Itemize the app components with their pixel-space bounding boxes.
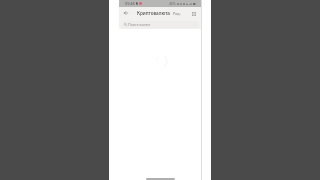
button[interactable]: Ред. bbox=[172, 9, 182, 18]
staticText: Криптовалюта bbox=[137, 10, 170, 16]
staticText: 46% bbox=[169, 2, 176, 6]
button[interactable]: Поиск валют bbox=[121, 21, 199, 28]
staticText: 09:48 bbox=[125, 1, 135, 6]
button[interactable]: Sort bbox=[189, 9, 198, 18]
button[interactable]: Back bbox=[121, 8, 131, 18]
staticText: Поиск валют bbox=[128, 22, 151, 27]
staticText: Ред. bbox=[173, 11, 181, 16]
